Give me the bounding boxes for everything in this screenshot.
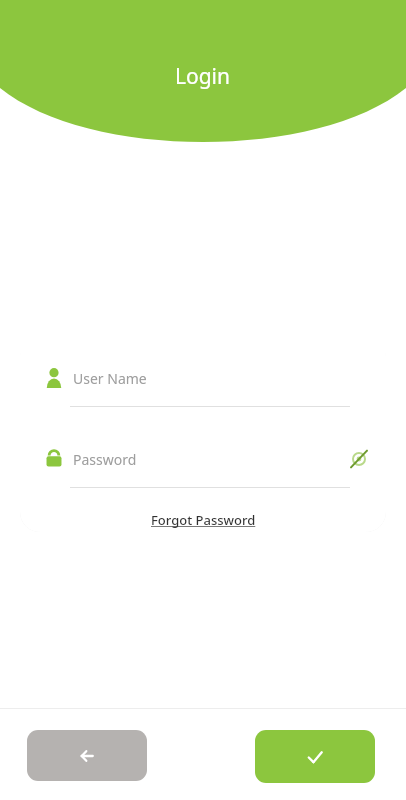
button[interactable]: Forgot Password xyxy=(145,508,262,532)
button[interactable]: Confirm xyxy=(255,730,375,783)
button[interactable]: Password xyxy=(20,441,386,477)
staticText: Password xyxy=(73,450,137,469)
button[interactable]: User Name xyxy=(20,360,386,396)
button[interactable]: Back xyxy=(27,730,147,781)
button[interactable]: Show password xyxy=(344,444,374,474)
staticText: Forgot Password xyxy=(151,511,256,529)
staticText: User Name xyxy=(73,369,147,388)
staticText: Login xyxy=(175,62,231,91)
